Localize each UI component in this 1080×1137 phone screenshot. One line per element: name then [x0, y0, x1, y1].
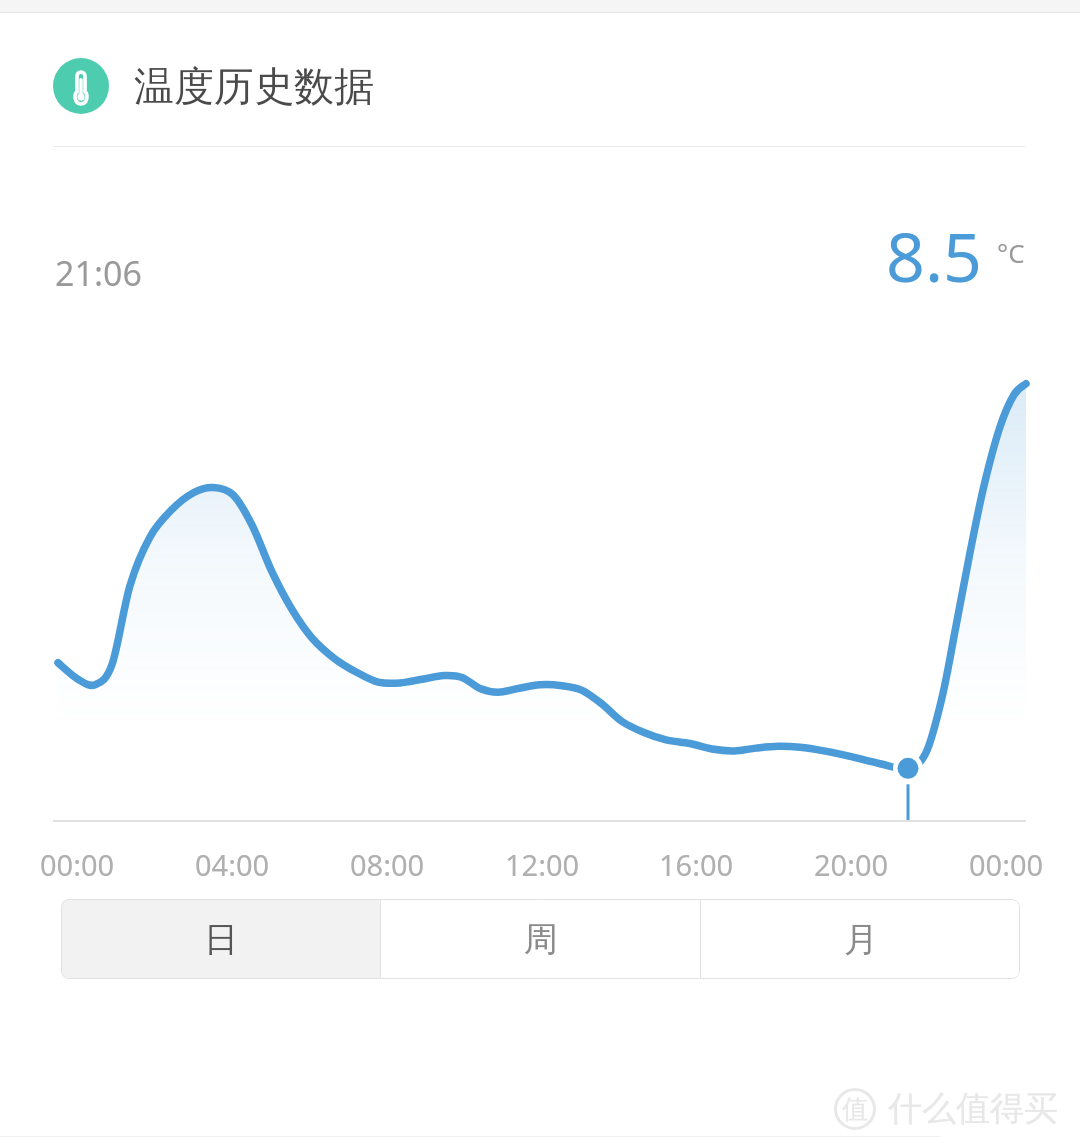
- staticText: 8.5: [886, 209, 983, 302]
- staticText: 00:00: [969, 845, 1044, 884]
- staticText: 什么值得买: [888, 1087, 1058, 1130]
- staticText: 20:00: [814, 845, 889, 884]
- staticText: 周: [524, 918, 558, 961]
- staticText: 月: [844, 918, 878, 961]
- button[interactable]: 周: [381, 899, 700, 979]
- button[interactable]: 日: [61, 899, 380, 979]
- button[interactable]: Temperature: [53, 58, 1080, 114]
- staticText: 16:00: [659, 845, 734, 884]
- staticText: 04:00: [195, 845, 270, 884]
- staticText: 08:00: [350, 845, 425, 884]
- staticText: 值: [842, 1093, 868, 1126]
- staticText: 00:00: [40, 845, 115, 884]
- other: Temperature: [53, 58, 109, 114]
- button[interactable]: 月: [701, 899, 1020, 979]
- staticText: 21:06: [55, 250, 142, 296]
- staticText: 12:00: [505, 845, 580, 884]
- staticText: 日: [204, 918, 238, 961]
- staticText: 温度历史数据: [134, 61, 374, 111]
- staticText: °C: [997, 235, 1025, 270]
